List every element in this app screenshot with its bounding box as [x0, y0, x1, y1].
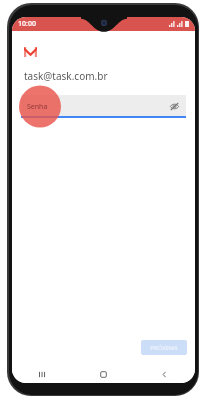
staticText: PRÓXIMA: [150, 344, 178, 352]
button[interactable]: Senha: [21, 95, 186, 118]
staticText: 10:00: [18, 19, 36, 29]
staticText: Senha: [27, 102, 48, 112]
button[interactable]: Mostrar senha: [169, 101, 180, 112]
staticText: Senha: [27, 102, 48, 112]
staticText: task@task.com.br: [24, 69, 108, 83]
button[interactable]: Recentes: [12, 365, 73, 383]
button[interactable]: Voltar: [134, 365, 195, 383]
button[interactable]: PRÓXIMA: [141, 340, 187, 355]
button[interactable]: Início: [73, 365, 134, 383]
